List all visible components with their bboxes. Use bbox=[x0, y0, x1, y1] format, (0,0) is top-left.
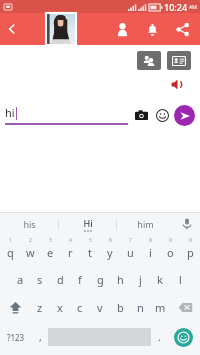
button[interactable]: s bbox=[30, 265, 50, 293]
button[interactable]: . bbox=[151, 321, 167, 353]
button[interactable]: Share bbox=[170, 17, 194, 41]
staticText: 7 bbox=[129, 237, 132, 244]
staticText: , bbox=[39, 330, 42, 344]
button[interactable]: 0 bbox=[180, 235, 200, 265]
staticText: 10:24 bbox=[164, 1, 188, 13]
button[interactable]: 1 bbox=[0, 235, 20, 265]
button[interactable]: 2 bbox=[20, 235, 40, 265]
staticText: a bbox=[17, 272, 24, 287]
button[interactable]: Emoji bbox=[153, 106, 171, 124]
staticText: j bbox=[139, 272, 142, 287]
staticText: 4 bbox=[69, 237, 72, 244]
button[interactable]: d bbox=[50, 265, 70, 293]
button[interactable]: Send bbox=[174, 105, 195, 126]
button[interactable]: hi bbox=[5, 102, 128, 128]
staticText: 5 bbox=[89, 237, 92, 244]
button[interactable]: , bbox=[32, 321, 48, 353]
button[interactable]: Voice input bbox=[174, 213, 200, 235]
staticText: q bbox=[7, 245, 14, 260]
staticText: r bbox=[68, 245, 73, 260]
staticText: 6 bbox=[109, 237, 112, 244]
button[interactable]: 6 bbox=[100, 235, 120, 265]
button[interactable]: k bbox=[150, 265, 170, 293]
button[interactable]: Hi bbox=[59, 213, 116, 235]
staticText: b bbox=[117, 300, 124, 315]
button[interactable]: 4 bbox=[60, 235, 80, 265]
staticText: Hi bbox=[83, 217, 93, 229]
button[interactable]: Group members bbox=[137, 51, 161, 70]
staticText: o bbox=[167, 245, 174, 260]
button[interactable]: g bbox=[90, 265, 110, 293]
button[interactable]: Contact card bbox=[167, 51, 191, 70]
staticText: y bbox=[107, 245, 113, 260]
staticText: t bbox=[88, 245, 92, 260]
staticText: 3 bbox=[49, 237, 52, 244]
staticText: e bbox=[47, 245, 54, 260]
button[interactable]: Profile photo bbox=[46, 13, 76, 45]
button[interactable]: x bbox=[50, 293, 70, 321]
button[interactable]: m bbox=[150, 293, 170, 321]
staticText: k bbox=[157, 272, 163, 287]
staticText: 0 bbox=[189, 237, 192, 244]
button[interactable]: j bbox=[130, 265, 150, 293]
staticText: 9 bbox=[169, 237, 172, 244]
button[interactable]: his bbox=[0, 213, 58, 235]
button[interactable]: Shift bbox=[0, 293, 30, 321]
button[interactable]: 3 bbox=[40, 235, 60, 265]
button[interactable]: Camera bbox=[132, 106, 150, 124]
staticText: c bbox=[77, 300, 83, 315]
staticText: d bbox=[57, 272, 64, 287]
staticText: p bbox=[187, 245, 194, 260]
button[interactable]: a bbox=[10, 265, 30, 293]
staticText: his bbox=[23, 218, 36, 230]
button[interactable]: Notifications bbox=[140, 17, 164, 41]
button[interactable]: z bbox=[30, 293, 50, 321]
staticText: h bbox=[117, 272, 124, 287]
button[interactable]: b bbox=[110, 293, 130, 321]
button[interactable]: Emoji keyboard bbox=[167, 321, 200, 353]
staticText: g bbox=[97, 272, 104, 287]
staticText: him bbox=[137, 218, 154, 230]
button[interactable]: Sound bbox=[167, 74, 187, 94]
staticText: i bbox=[149, 245, 152, 260]
button[interactable]: him bbox=[117, 213, 174, 235]
button[interactable]: l bbox=[170, 265, 190, 293]
staticText: n bbox=[137, 300, 144, 315]
button[interactable]: ?123 bbox=[0, 321, 32, 353]
button[interactable]: Backspace bbox=[170, 293, 200, 321]
staticText: u bbox=[127, 245, 134, 260]
staticText: 2 bbox=[29, 237, 32, 244]
staticText: ?123 bbox=[7, 332, 25, 343]
button[interactable]: 9 bbox=[160, 235, 180, 265]
button[interactable]: Contact bbox=[110, 17, 134, 41]
staticText: v bbox=[97, 300, 103, 315]
button[interactable]: n bbox=[130, 293, 150, 321]
button[interactable]: 8 bbox=[140, 235, 160, 265]
staticText: l bbox=[179, 272, 182, 287]
staticText: 1 bbox=[9, 237, 12, 244]
staticText: m bbox=[155, 300, 166, 315]
staticText: z bbox=[37, 300, 43, 315]
button[interactable]: 7 bbox=[120, 235, 140, 265]
staticText: s bbox=[37, 272, 43, 287]
staticText: x bbox=[57, 300, 63, 315]
button[interactable]: 5 bbox=[80, 235, 100, 265]
button[interactable]: c bbox=[70, 293, 90, 321]
staticText: hi bbox=[5, 105, 15, 120]
button[interactable]: f bbox=[70, 265, 90, 293]
button[interactable]: h bbox=[110, 265, 130, 293]
button[interactable]: Back bbox=[0, 17, 24, 41]
staticText: AM bbox=[189, 4, 197, 11]
staticText: f bbox=[78, 272, 82, 287]
staticText: 8 bbox=[149, 237, 152, 244]
staticText: w bbox=[26, 245, 35, 260]
button[interactable]: v bbox=[90, 293, 110, 321]
staticText: . bbox=[158, 330, 161, 344]
